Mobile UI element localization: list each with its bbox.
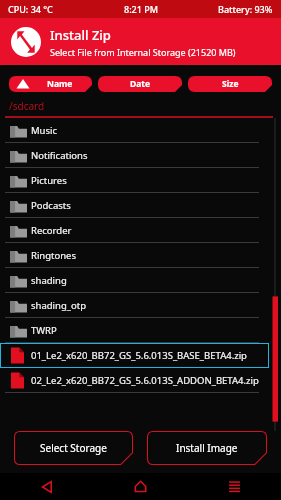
- button[interactable]: Install Image: [147, 431, 267, 465]
- button[interactable]: 02_Le2_x620_BB72_GS_5.6.013S_ADDON_BETA4…: [0, 368, 269, 393]
- staticText: Pictures: [31, 174, 67, 187]
- button[interactable]: Name: [9, 76, 92, 92]
- button[interactable]: Pictures: [0, 168, 269, 193]
- button[interactable]: Back: [0, 473, 93, 500]
- staticText: 8:21 PM: [124, 3, 158, 15]
- staticText: Podcasts: [31, 199, 71, 212]
- staticText: Date: [130, 78, 151, 90]
- button[interactable]: 01_Le2_x620_BB72_GS_5.6.013S_BASE_BETA4.…: [0, 343, 269, 368]
- button[interactable]: shading_otp: [0, 293, 269, 318]
- button[interactable]: Size: [188, 76, 272, 92]
- button[interactable]: Ringtones: [0, 243, 269, 268]
- staticText: Ringtones: [31, 249, 77, 262]
- staticText: Size: [222, 78, 239, 90]
- staticText: Recorder: [31, 224, 72, 237]
- staticText: TWRP: [31, 324, 57, 337]
- staticText: Select Storage: [40, 441, 107, 455]
- staticText: Name: [47, 78, 73, 90]
- button[interactable]: TWRP: [0, 318, 269, 343]
- staticText: Music: [31, 124, 58, 137]
- button[interactable]: Date: [98, 76, 182, 92]
- staticText: Install Zip: [50, 26, 111, 44]
- staticText: shading: [31, 274, 67, 287]
- staticText: 02_Le2_x620_BB72_GS_5.6.013S_ADDON_BETA4…: [31, 374, 259, 387]
- staticText: 01_Le2_x620_BB72_GS_5.6.013S_BASE_BETA4.…: [31, 349, 247, 362]
- staticText: Notifications: [31, 149, 88, 162]
- button[interactable]: Podcasts: [0, 193, 269, 218]
- staticText: CPU: 34 °C: [8, 3, 53, 15]
- staticText: shading_otp: [31, 299, 86, 312]
- button[interactable]: Menu: [187, 473, 281, 500]
- button[interactable]: Home: [93, 473, 187, 500]
- button[interactable]: Recorder: [0, 218, 269, 243]
- button[interactable]: Notifications: [0, 143, 269, 168]
- staticText: Select File from Internal Storage (21520…: [50, 46, 236, 58]
- button[interactable]: Music: [0, 118, 269, 143]
- other: TWRP: [11, 27, 41, 57]
- staticText: /sdcard: [9, 99, 45, 113]
- staticText: Install Image: [176, 441, 238, 455]
- button[interactable]: shading: [0, 268, 269, 293]
- button[interactable]: Select Storage: [14, 431, 133, 465]
- staticText: Battery: 93%: [218, 3, 273, 15]
